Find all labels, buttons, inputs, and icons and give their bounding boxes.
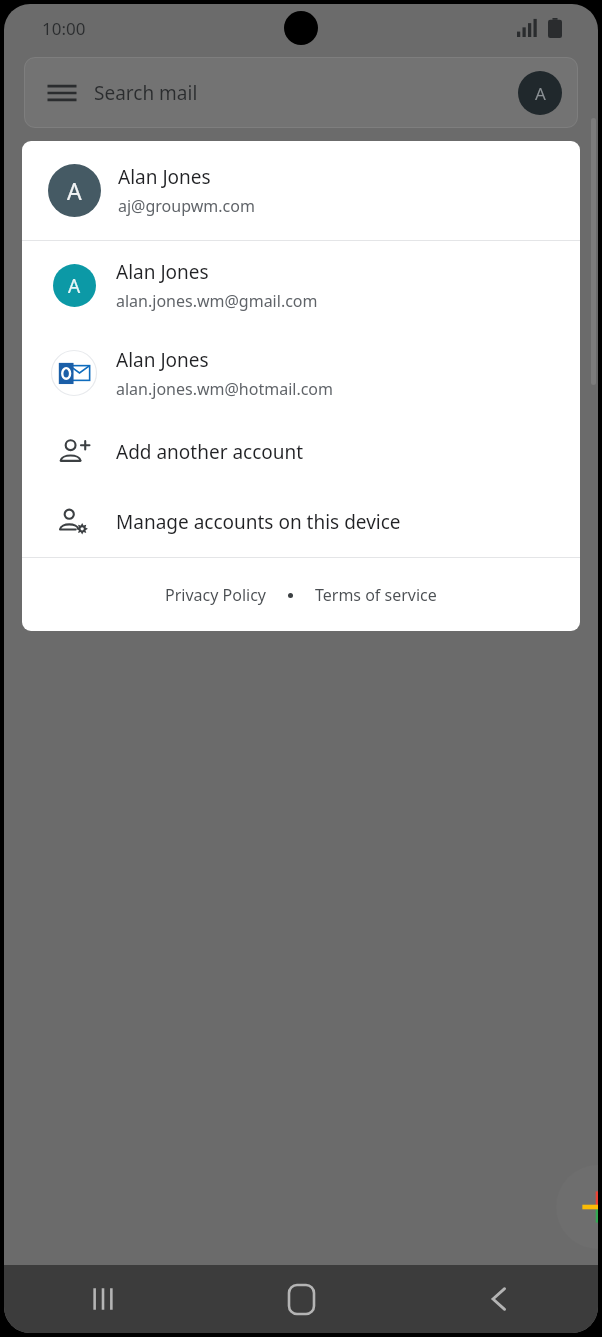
staticText: A bbox=[535, 82, 546, 105]
button[interactable]: Add another account bbox=[22, 417, 580, 487]
staticText: Terms of service bbox=[315, 584, 437, 606]
staticText: aj@groupwm.com bbox=[118, 195, 255, 217]
button[interactable]: Recent apps bbox=[75, 1271, 131, 1327]
staticText: alan.jones.wm@hotmail.com bbox=[116, 378, 333, 400]
button[interactable]: Open navigation drawer bbox=[40, 71, 84, 115]
button[interactable]: A bbox=[22, 141, 580, 240]
button[interactable]: Manage accounts on this device bbox=[22, 487, 580, 557]
staticText: Alan Jones bbox=[116, 259, 209, 285]
staticText: A bbox=[67, 175, 82, 206]
button[interactable]: A bbox=[22, 241, 580, 329]
button[interactable]: Open navigation drawer bbox=[24, 57, 578, 128]
staticText: Manage accounts on this device bbox=[116, 509, 401, 535]
button[interactable]: Privacy Policy bbox=[159, 580, 272, 610]
staticText: Alan Jones bbox=[116, 347, 209, 373]
button[interactable]: Terms of service bbox=[309, 580, 443, 610]
staticText: Add another account bbox=[116, 439, 304, 465]
button[interactable]: Back bbox=[471, 1271, 527, 1327]
button[interactable]: Compose bbox=[556, 1165, 598, 1249]
staticText: Privacy Policy bbox=[165, 584, 266, 606]
staticText: alan.jones.wm@gmail.com bbox=[116, 290, 318, 312]
button[interactable]: Alan Jones bbox=[22, 329, 580, 417]
staticText: A bbox=[68, 273, 81, 299]
staticText: 10:00 bbox=[42, 17, 86, 40]
staticText: Alan Jones bbox=[118, 164, 211, 190]
button[interactable]: Account bbox=[518, 71, 562, 115]
staticText: Search mail bbox=[94, 80, 198, 106]
button[interactable]: Home bbox=[273, 1271, 329, 1327]
